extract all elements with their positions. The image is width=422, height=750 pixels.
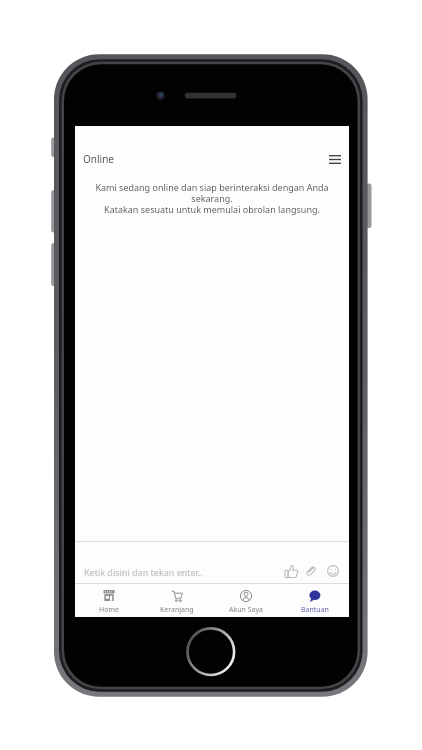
staticText: Akun Saya <box>229 605 263 615</box>
staticText: Home <box>99 605 119 615</box>
staticText: Kami sedang online dan siap berinteraksi… <box>75 181 349 216</box>
button[interactable]: Ketik disini dan tekan enter.. <box>75 542 349 583</box>
button[interactable] <box>303 563 319 579</box>
button[interactable]: Akun Saya <box>211 584 280 617</box>
button[interactable]: Home <box>75 584 143 617</box>
button[interactable] <box>283 563 299 579</box>
staticText: Keranjang <box>160 605 194 615</box>
button[interactable] <box>322 150 348 168</box>
staticText: Online <box>83 152 114 166</box>
button[interactable]: Keranjang <box>143 584 211 617</box>
button[interactable]: Bantuan <box>280 584 349 617</box>
staticText: Bantuan <box>301 605 329 615</box>
button[interactable] <box>325 563 341 579</box>
staticText: Ketik disini dan tekan enter.. <box>84 566 203 578</box>
